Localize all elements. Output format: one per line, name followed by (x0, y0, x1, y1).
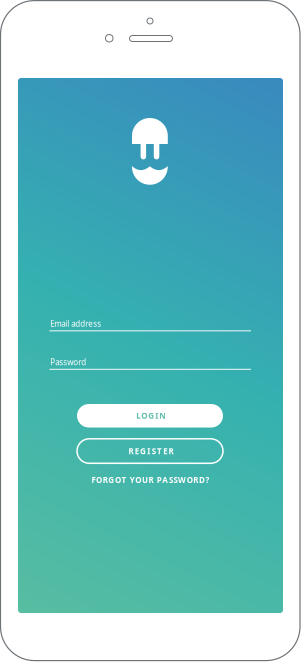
button[interactable]: FORGOT YOUR PASSWORD? (50, 474, 250, 486)
staticText: REGISTER (128, 446, 174, 456)
staticText: Password (50, 357, 86, 367)
button[interactable]: REGISTER (77, 439, 223, 463)
staticText: LOGIN (136, 410, 166, 421)
staticText: FORGOT YOUR PASSWORD? (91, 475, 209, 485)
staticText: Email address (50, 318, 101, 329)
button[interactable]: LOGIN (77, 404, 223, 427)
